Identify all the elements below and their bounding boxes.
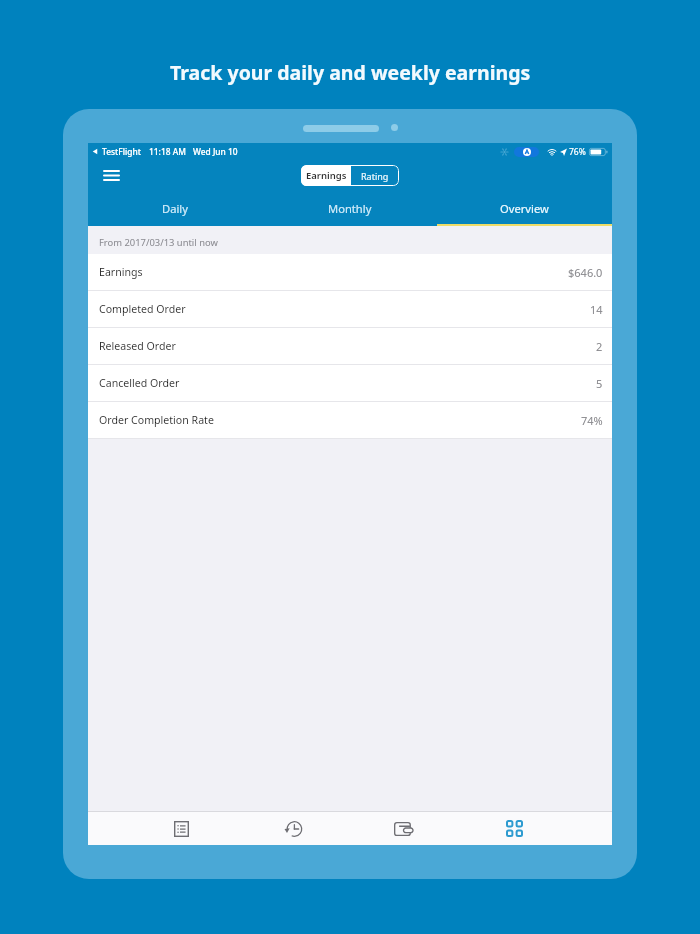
- staticText: From 2017/03/13 until now: [99, 236, 218, 249]
- staticText: Daily: [162, 201, 188, 216]
- staticText: 11:18 AM: [149, 146, 186, 157]
- button[interactable]: Menu: [100, 162, 123, 188]
- staticText: Wed Jun 10: [193, 146, 238, 157]
- button[interactable]: More: [459, 812, 570, 845]
- button[interactable]: Wallet: [348, 812, 459, 845]
- staticText: Track your daily and weekly earnings: [170, 59, 531, 86]
- button[interactable]: Orders: [126, 812, 237, 845]
- button[interactable]: Cancelled Order: [88, 365, 612, 401]
- button[interactable]: Daily: [88, 191, 262, 226]
- staticText: TestFlight: [102, 146, 141, 157]
- button[interactable]: Completed Order: [88, 291, 612, 327]
- button[interactable]: Released Order: [88, 328, 612, 364]
- button[interactable]: Earnings: [301, 165, 351, 186]
- button[interactable]: Earnings: [88, 254, 612, 290]
- staticText: Earnings: [306, 169, 347, 182]
- staticText: Overview: [500, 201, 549, 216]
- button[interactable]: Overview: [437, 191, 612, 226]
- button[interactable]: Order Completion Rate: [88, 402, 612, 438]
- staticText: Order Completion Rate: [99, 413, 214, 427]
- staticText: Released Order: [99, 339, 176, 353]
- staticText: Earnings: [99, 265, 143, 279]
- staticText: $646.0: [568, 265, 603, 280]
- staticText: Completed Order: [99, 302, 186, 316]
- staticText: 5: [596, 376, 603, 391]
- staticText: Monthly: [328, 201, 372, 216]
- staticText: Rating: [361, 170, 389, 182]
- staticText: Cancelled Order: [99, 376, 180, 390]
- staticText: 14: [590, 302, 603, 317]
- button[interactable]: Rating: [351, 165, 399, 186]
- button[interactable]: History: [237, 812, 348, 845]
- button[interactable]: Monthly: [262, 191, 437, 226]
- staticText: 74%: [581, 413, 603, 428]
- staticText: 76%: [569, 146, 586, 158]
- staticText: 2: [596, 339, 603, 354]
